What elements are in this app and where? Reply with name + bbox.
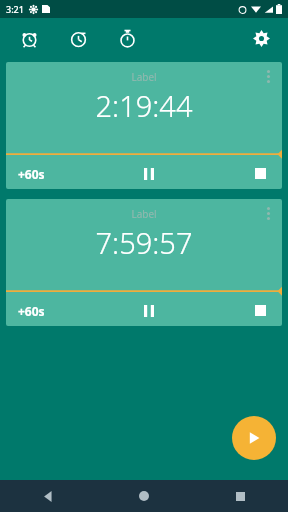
button[interactable]: Back xyxy=(0,480,96,512)
button[interactable]: Stopwatch xyxy=(112,23,142,53)
staticText: +60s xyxy=(18,303,45,319)
staticText: 2:19:44 xyxy=(6,86,282,125)
staticText: 3:21 xyxy=(6,3,24,15)
button[interactable]: Recent apps xyxy=(192,480,288,512)
button[interactable]: Settings xyxy=(246,23,276,53)
button[interactable]: Home xyxy=(96,480,192,512)
button[interactable]: Stop xyxy=(245,295,276,326)
staticText: Label xyxy=(6,70,282,84)
button[interactable]: More options xyxy=(256,64,280,88)
button[interactable]: Pause xyxy=(133,158,164,189)
button[interactable]: Start timer xyxy=(232,416,276,460)
staticText: Label xyxy=(6,207,282,221)
button[interactable]: Label xyxy=(6,199,282,326)
button[interactable]: Stop xyxy=(245,158,276,189)
button[interactable]: +60s xyxy=(10,295,53,326)
button[interactable]: Pause xyxy=(133,295,164,326)
button[interactable]: Alarm xyxy=(14,23,44,53)
button[interactable]: More options xyxy=(256,201,280,225)
button[interactable]: Label xyxy=(6,62,282,189)
button[interactable]: Clock xyxy=(63,23,93,53)
staticText: 7:59:57 xyxy=(6,223,282,262)
button[interactable]: +60s xyxy=(10,158,53,189)
staticText: +60s xyxy=(18,166,45,182)
